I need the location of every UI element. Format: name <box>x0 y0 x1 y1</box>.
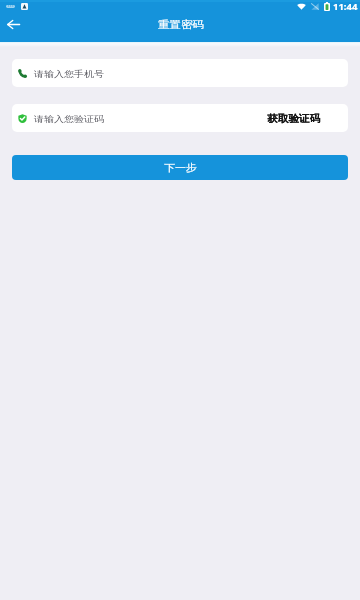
staticText: 获取验证码 <box>267 112 321 124</box>
staticText: 请输入您手机号 <box>34 68 104 79</box>
button[interactable]: 请输入您验证码 <box>12 104 348 132</box>
button[interactable]: 下一步 <box>12 155 348 180</box>
button[interactable]: 请输入您手机号 <box>12 59 348 87</box>
staticText: 下一步 <box>164 161 197 173</box>
button[interactable]: 获取验证码 <box>263 108 325 129</box>
button[interactable]: Back <box>1 12 25 36</box>
staticText: 11:44 <box>333 0 358 13</box>
staticText: 请输入您验证码 <box>34 113 104 124</box>
staticText: 获取验证码 <box>267 112 321 124</box>
staticText: 获取验证码 <box>267 112 321 124</box>
staticText: 重置密码 <box>158 19 204 31</box>
